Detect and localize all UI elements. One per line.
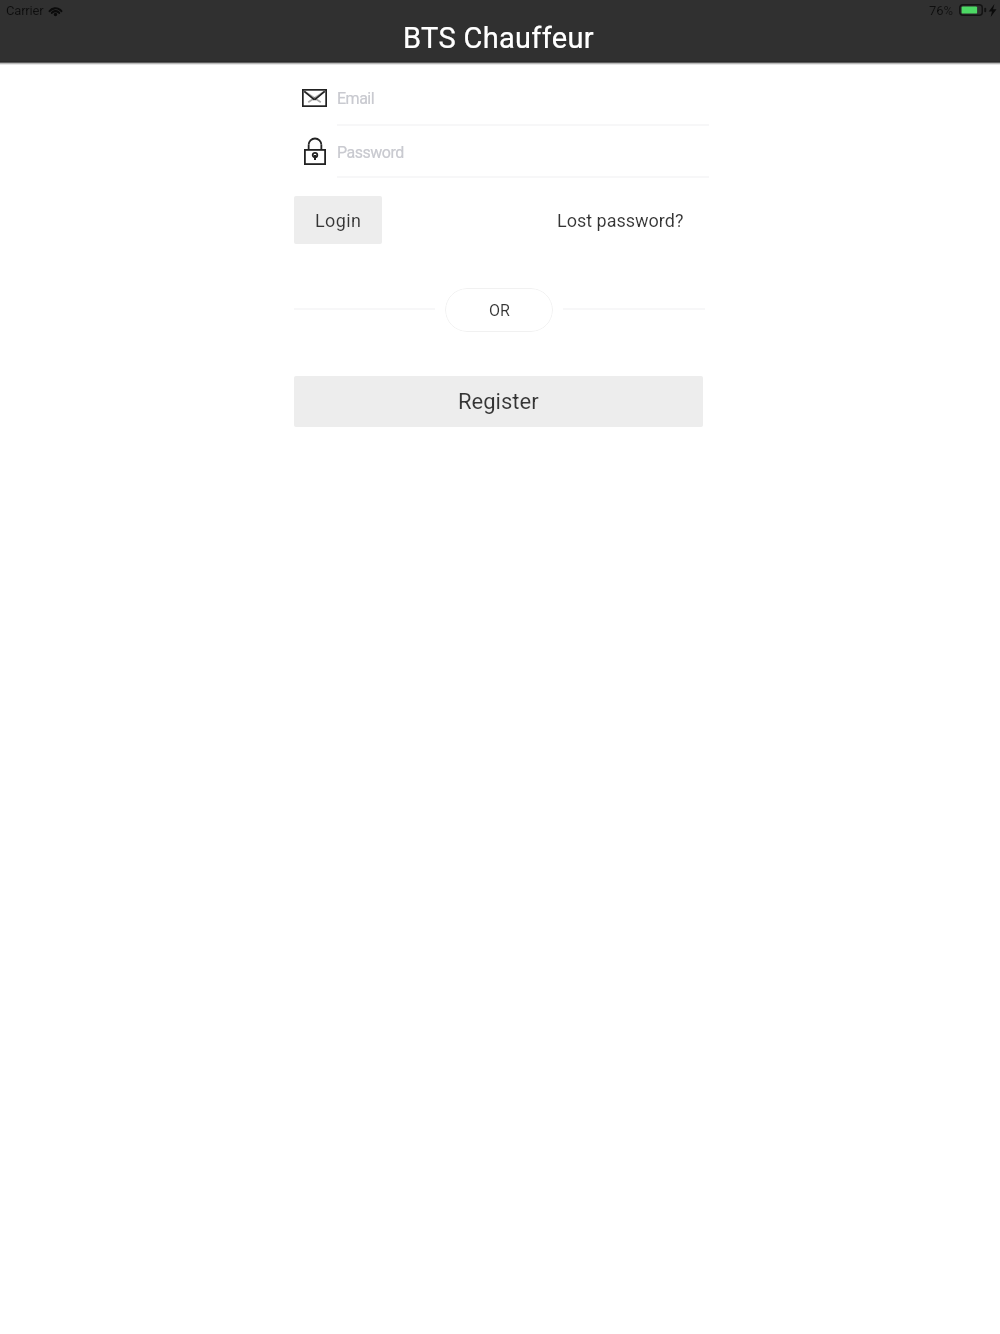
other: Password (304, 137, 326, 165)
staticText: Register (458, 389, 539, 415)
staticText: OR (489, 301, 510, 320)
other: Battery (959, 4, 986, 16)
other: Email (302, 89, 327, 107)
staticText: Email (337, 89, 375, 108)
staticText: Lost password? (557, 210, 684, 231)
staticText: BTS Chauffeur (403, 21, 594, 55)
other: Wifi (48, 5, 63, 16)
staticText: 76% (929, 3, 954, 18)
other: Charging (988, 4, 997, 17)
button[interactable]: OR (445, 288, 553, 332)
button[interactable]: Register (294, 376, 703, 427)
button[interactable]: Login (294, 196, 382, 244)
staticText: Carrier (6, 3, 44, 18)
button[interactable]: Password (294, 131, 709, 178)
staticText: Login (315, 210, 362, 231)
staticText: Password (337, 143, 404, 162)
button[interactable]: Lost password? (548, 203, 692, 237)
button[interactable]: Email (294, 79, 709, 126)
